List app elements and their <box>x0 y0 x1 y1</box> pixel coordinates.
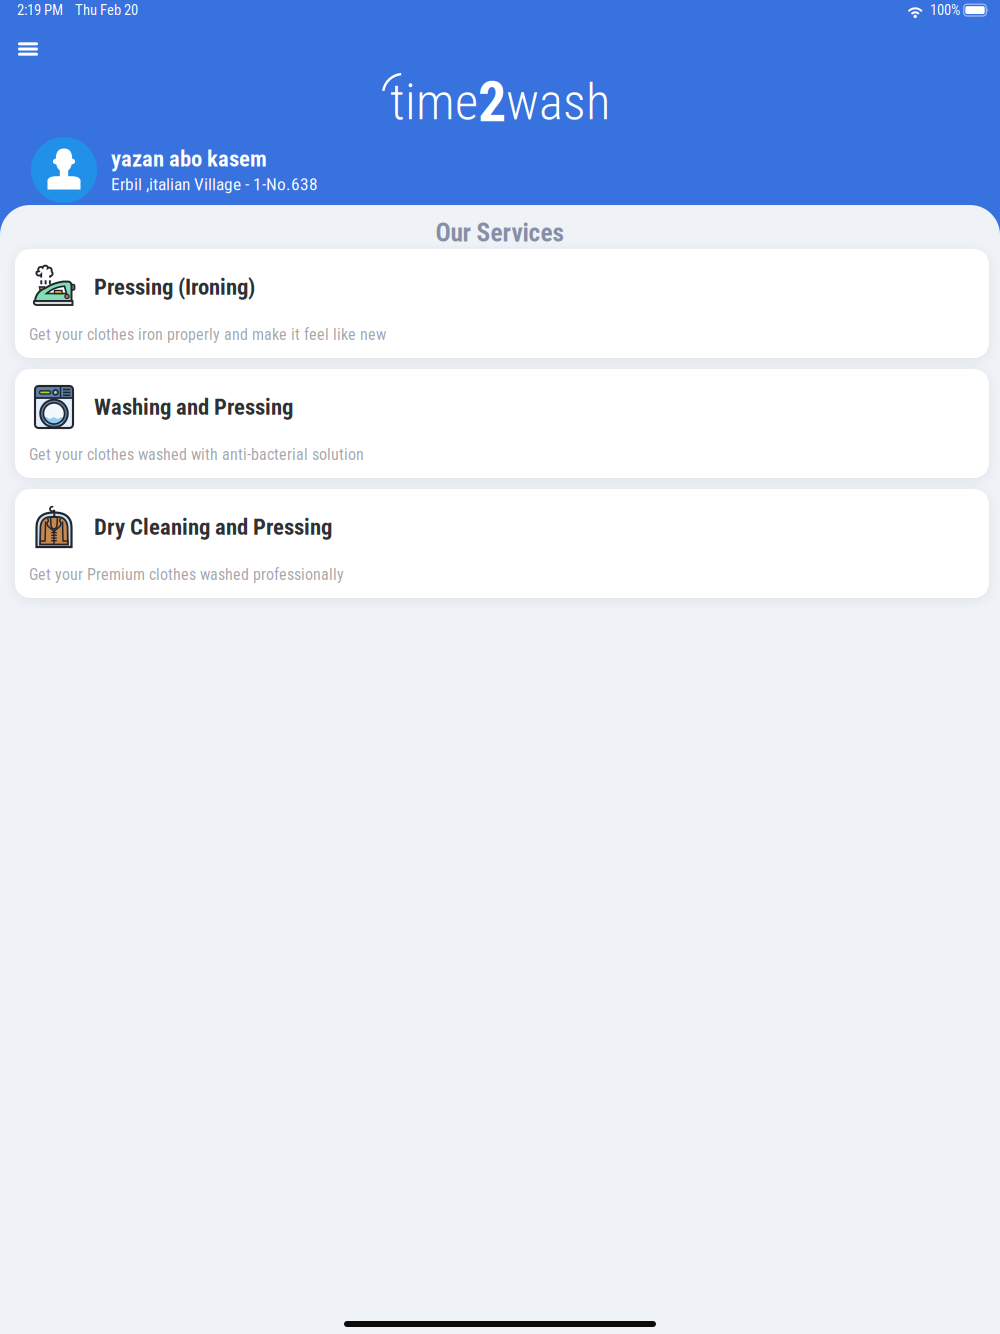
staticText: Get your clothes iron properly and make … <box>29 325 386 344</box>
button[interactable]: Pressing (Ironing) <box>15 249 989 358</box>
button[interactable]: yazan abo kasem <box>0 137 1000 203</box>
staticText: 2 <box>478 69 506 135</box>
button[interactable]: Dry Cleaning and Pressing <box>15 489 989 598</box>
staticText: time <box>390 72 478 132</box>
staticText: Erbil ,italian Village - 1-No.638 <box>111 174 318 194</box>
button[interactable]: Menu <box>8 31 48 67</box>
staticText: Washing and Pressing <box>94 394 293 420</box>
staticText: Thu Feb 20 <box>75 1 138 19</box>
staticText: Our Services <box>435 218 564 248</box>
staticText: yazan abo kasem <box>111 146 267 172</box>
staticText: Pressing (Ironing) <box>94 274 255 300</box>
staticText: Dry Cleaning and Pressing <box>94 514 332 540</box>
staticText: 100% <box>930 1 960 19</box>
staticText: wash <box>506 72 610 132</box>
staticText: Get your Premium clothes washed professi… <box>29 565 344 584</box>
button[interactable]: Washing and Pressing <box>15 369 989 478</box>
staticText: Get your clothes washed with anti-bacter… <box>29 445 364 464</box>
staticText: 2:19 PM <box>17 1 63 19</box>
